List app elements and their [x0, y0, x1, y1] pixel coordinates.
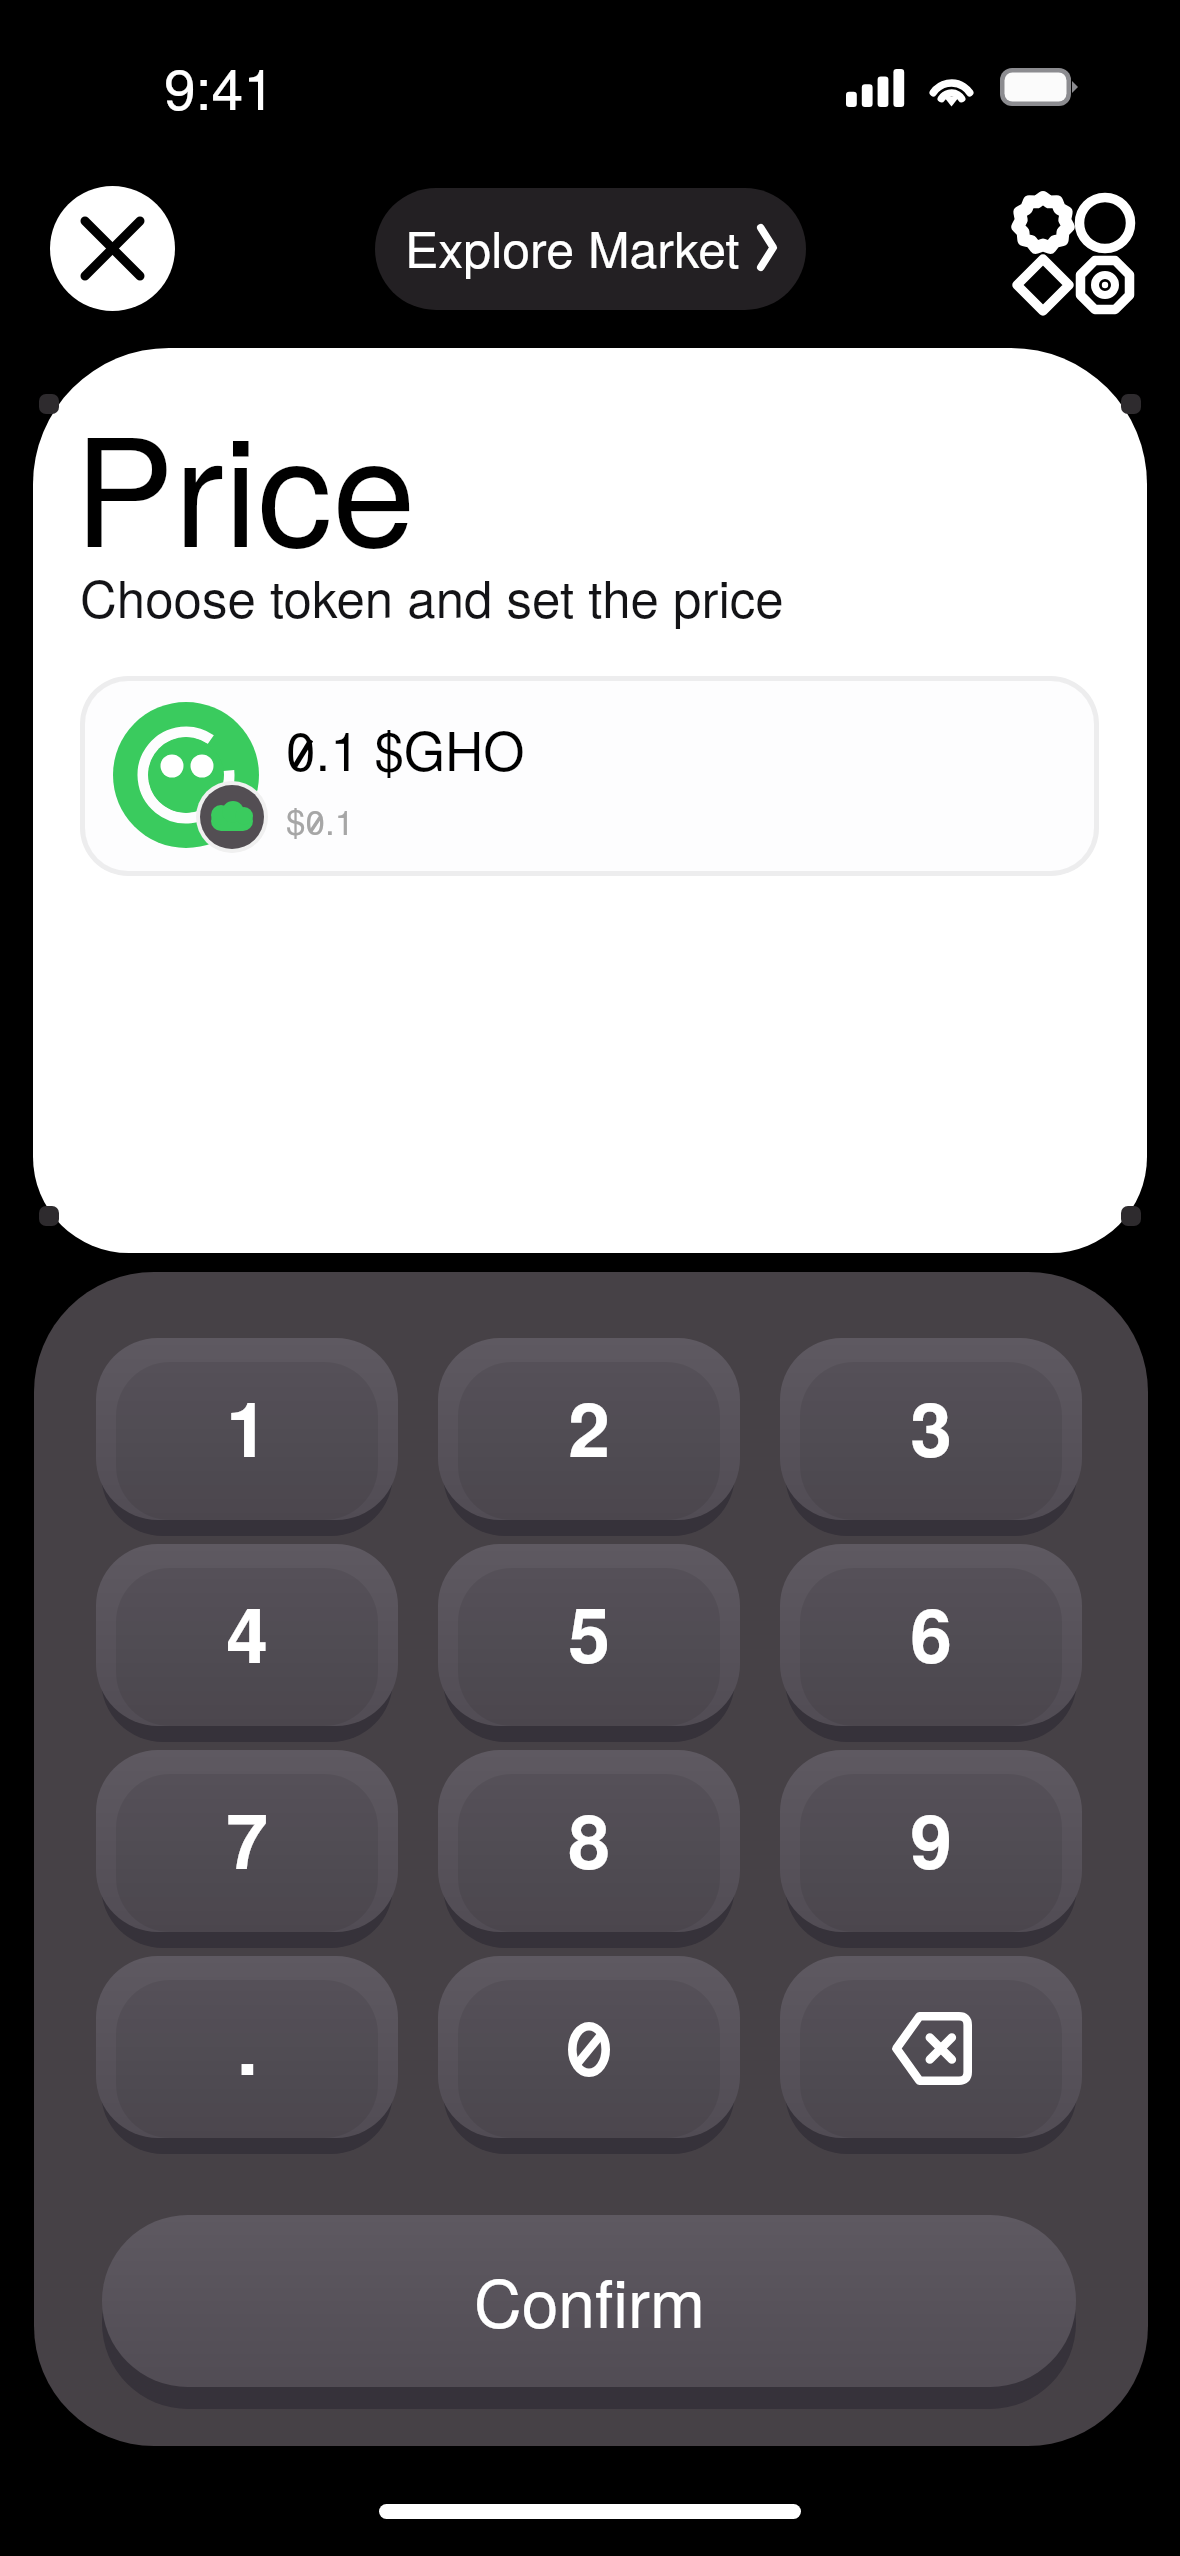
staticText: Confirm [474, 2252, 705, 2347]
button[interactable]: 7 [96, 1750, 398, 1932]
staticText: 1 [226, 1373, 268, 1480]
button[interactable]: Explore Market [375, 188, 806, 310]
button[interactable]: 1 [96, 1338, 398, 1520]
button[interactable] [438, 1956, 740, 2138]
button[interactable]: 9 [780, 1750, 1082, 1932]
button[interactable]: 2 [438, 1338, 740, 1520]
staticText: 5 [568, 1579, 610, 1686]
button[interactable]: 3 [780, 1338, 1082, 1520]
staticText: Choose token and set the price [80, 559, 784, 632]
button[interactable]: 5 [438, 1544, 740, 1726]
button[interactable]: Confirm [102, 2215, 1076, 2387]
staticText: 9 [910, 1785, 952, 1892]
button[interactable]: 8 [438, 1750, 740, 1932]
button[interactable]: Close [50, 186, 175, 311]
staticText: 2 [568, 1373, 610, 1480]
staticText: 4 [226, 1579, 268, 1686]
staticText: 6 [910, 1579, 952, 1686]
staticText: 8 [568, 1785, 610, 1892]
button[interactable]: Apps [1001, 180, 1137, 316]
staticText: . [237, 1991, 258, 2098]
staticText: 0.1 $GHO [286, 710, 525, 786]
button[interactable]: 6 [780, 1544, 1082, 1726]
staticText: 3 [910, 1373, 952, 1480]
button[interactable]: . [96, 1956, 398, 2138]
button[interactable] [780, 1956, 1082, 2138]
staticText: Explore Market [405, 211, 740, 283]
button[interactable]: 0.1 $GHO [85, 681, 1094, 871]
button[interactable]: 4 [96, 1544, 398, 1726]
staticText: 9:41 [164, 45, 275, 127]
staticText: $0.1 [286, 795, 355, 845]
staticText: 7 [226, 1785, 268, 1892]
staticText: Price [74, 375, 416, 590]
